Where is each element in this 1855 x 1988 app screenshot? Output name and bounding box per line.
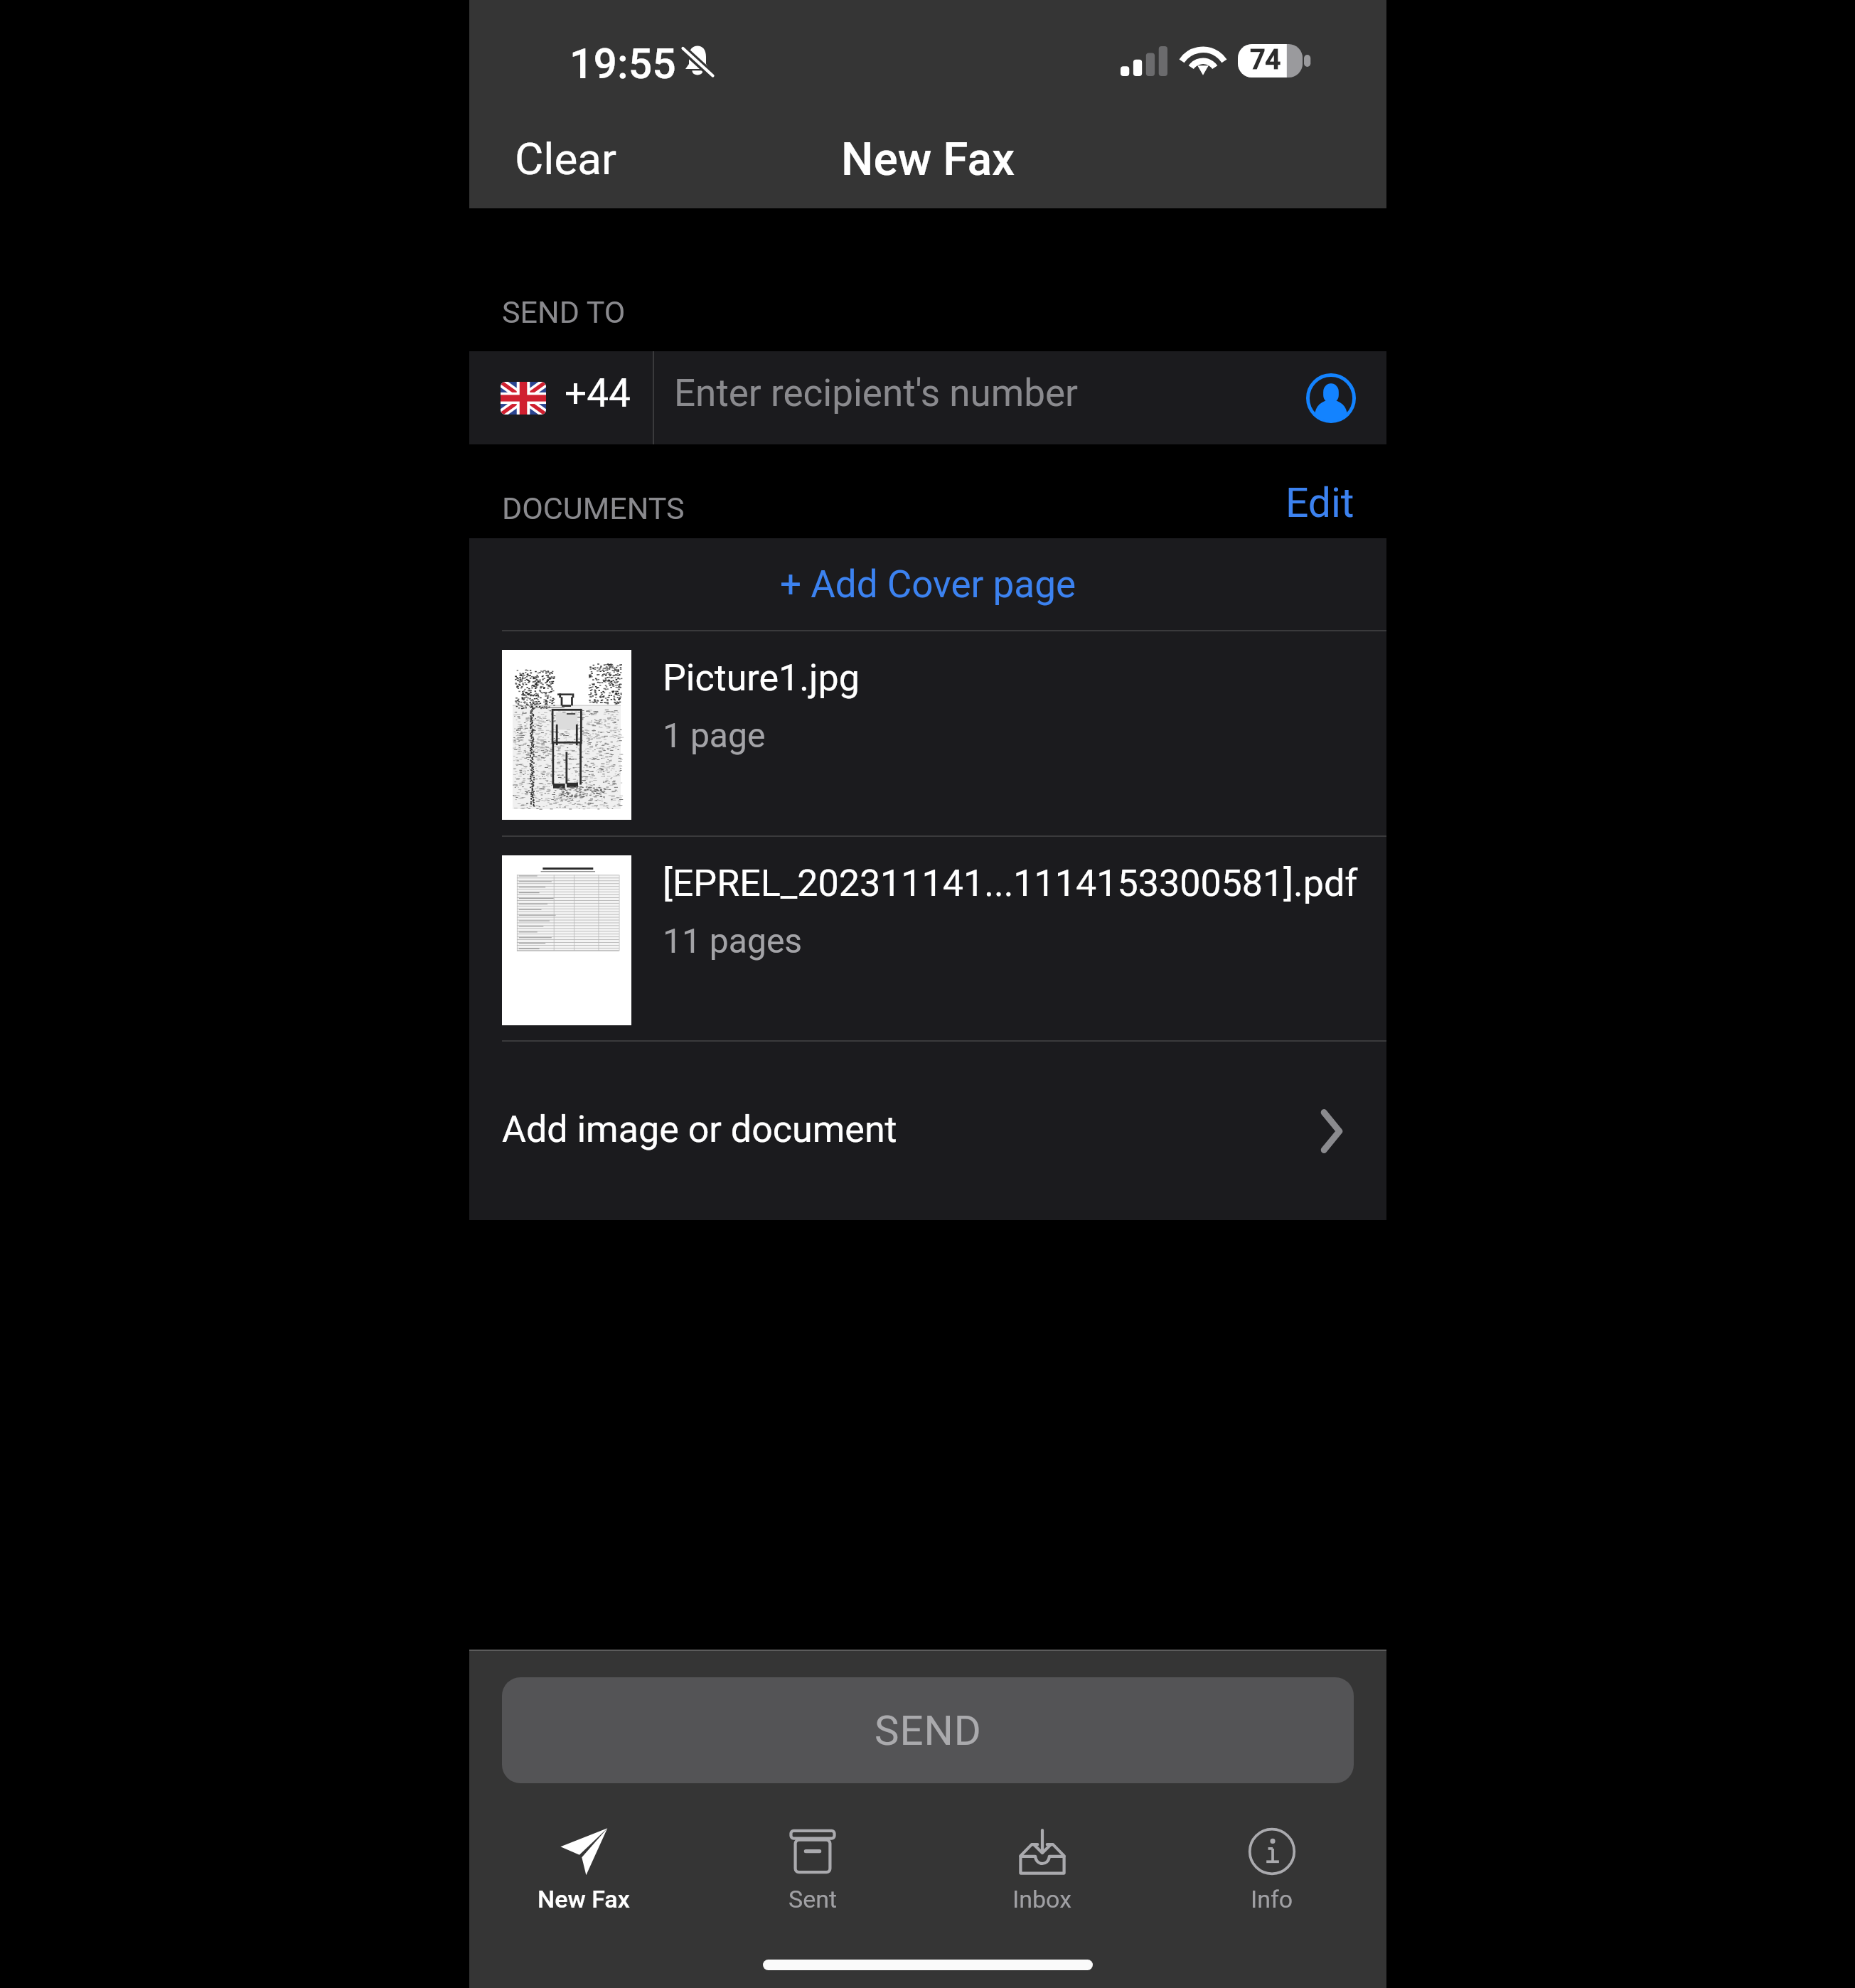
staticText: New Fax (538, 1885, 630, 1913)
staticText: [EPREL_202311141...1114153300581].pdf (663, 862, 1358, 905)
staticText: 1 page (663, 715, 766, 755)
button[interactable]: SEND (502, 1677, 1354, 1783)
button[interactable]: +44 (469, 351, 653, 444)
staticText: SEND TO (502, 294, 626, 330)
staticText: Inbox (1012, 1885, 1072, 1913)
button[interactable]: Add image or document (469, 1042, 1386, 1220)
button[interactable]: Picture1.jpg (469, 631, 1386, 835)
button[interactable]: Sent (698, 1821, 927, 1913)
button[interactable]: + Add Cover page (469, 538, 1386, 630)
staticText: 11 pages (663, 921, 803, 961)
staticText: Picture1.jpg (663, 656, 860, 700)
staticText: 74 (1250, 44, 1281, 76)
button[interactable]: [EPREL_202311141...1114153300581].pdf (469, 837, 1386, 1040)
staticText: Info (1251, 1885, 1293, 1913)
button[interactable]: Clear (493, 122, 638, 196)
staticText: +44 (565, 370, 631, 416)
staticText: New Fax (841, 133, 1015, 186)
staticText: + Add Cover page (780, 562, 1076, 606)
staticText: Enter recipient's number (674, 371, 1078, 415)
staticText: Clear (515, 133, 617, 185)
button[interactable]: Info (1157, 1821, 1386, 1913)
button[interactable]: Choose contact (1284, 351, 1378, 444)
button[interactable]: Edit (1285, 479, 1354, 527)
staticText: Edit (1285, 479, 1354, 527)
staticText: Sent (788, 1885, 838, 1913)
button[interactable]: Inbox (927, 1821, 1157, 1913)
staticText: DOCUMENTS (502, 491, 685, 526)
button[interactable]: Enter recipient's number (654, 351, 1284, 444)
staticText: Add image or document (502, 1108, 897, 1151)
staticText: 19:55 (570, 39, 676, 88)
staticText: SEND (875, 1706, 982, 1755)
button[interactable]: New Fax (469, 1821, 698, 1913)
